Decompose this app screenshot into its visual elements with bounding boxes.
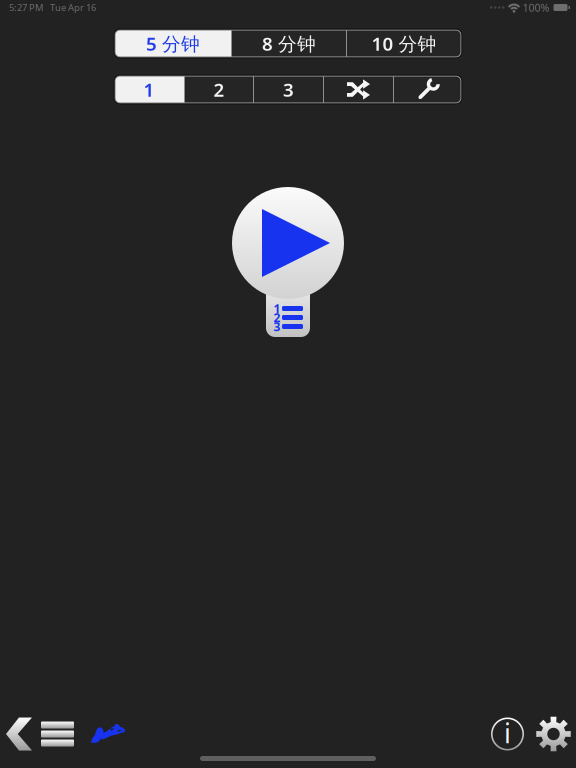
button[interactable]: 5 分钟 [115,30,231,57]
staticText: 1 [143,77,154,102]
staticText: 5 分钟 [146,31,200,56]
button[interactable]: Settings [533,713,574,754]
staticText: 3 [273,318,280,334]
button[interactable]: Play [232,168,344,318]
button[interactable]: Settings [394,76,462,103]
button[interactable]: 10 分钟 [347,30,461,57]
staticText: 100% [522,0,549,15]
button[interactable]: 1 [114,76,184,103]
button[interactable]: Back [0,708,38,759]
staticText: 2 [273,309,280,325]
staticText: 8 分钟 [262,31,316,56]
staticText: 3 [283,77,294,102]
staticText: 5:27 PM [9,1,43,14]
staticText: 1 [273,300,280,316]
staticText: 2 [213,77,224,102]
button[interactable]: 8 分钟 [232,30,346,57]
staticText: i [504,715,511,751]
button[interactable]: Info [487,713,528,754]
staticText: 10 分钟 [371,31,436,56]
button[interactable]: Exercises [77,708,128,760]
button[interactable]: Shuffle [324,76,393,103]
button[interactable]: 2 [185,76,253,103]
button[interactable]: Menu [38,709,77,758]
staticText: Tue Apr 16 [50,1,96,14]
button[interactable]: 3 [254,76,323,103]
